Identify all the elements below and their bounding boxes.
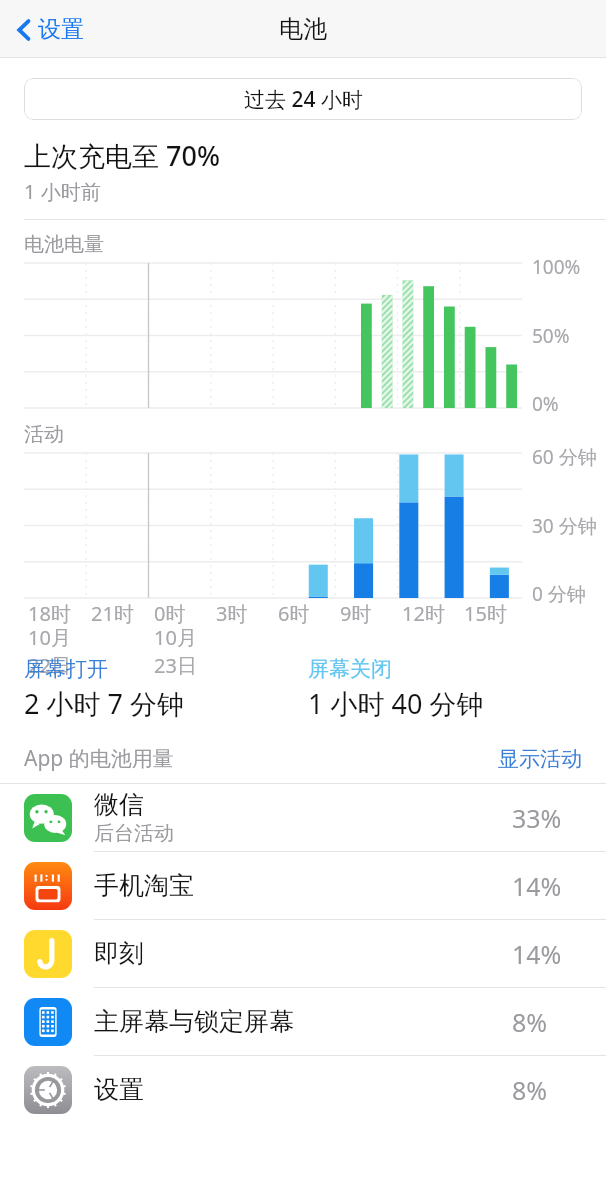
staticText: 即刻 (94, 938, 144, 969)
staticText: 1 小时前 (24, 178, 101, 205)
staticText: 18时 (28, 600, 71, 627)
staticText: 2 小时 7 分钟 (24, 685, 184, 722)
staticText: 60 分钟 (532, 444, 597, 470)
staticText: 电池 (279, 14, 327, 44)
staticText: 手机淘宝 (94, 870, 194, 901)
staticText: 8% (512, 1005, 582, 1039)
staticText: 14% (512, 937, 582, 971)
staticText: 12时 (402, 600, 445, 627)
button[interactable]: 手机淘宝 (0, 852, 606, 919)
staticText: 屏幕打开 (24, 656, 108, 682)
staticText: 0时 (154, 600, 186, 627)
staticText: 过去 24 小时 (244, 85, 363, 114)
staticText: 微信 (94, 789, 144, 820)
staticText: 主屏幕与锁定屏幕 (94, 1006, 294, 1037)
button[interactable]: 显示活动 (498, 746, 582, 772)
staticText: 10月22日 (28, 624, 87, 676)
button[interactable]: 主屏幕与锁定屏幕 (0, 988, 606, 1055)
staticText: 6时 (278, 600, 310, 627)
staticText: 33% (512, 801, 582, 835)
staticText: 30 分钟 (532, 513, 597, 539)
staticText: 21时 (91, 600, 134, 627)
staticText: 1 小时 40 分钟 (308, 685, 484, 722)
staticText: 15时 (464, 600, 507, 627)
other: 设置 (24, 1066, 72, 1114)
staticText: 9时 (340, 600, 372, 627)
other: 即刻 (24, 930, 72, 978)
other: 微信 (24, 794, 72, 842)
other: 手机淘宝 (24, 862, 72, 910)
staticText: 设置 (94, 1074, 144, 1105)
staticText: 上次充电至 70% (24, 137, 220, 174)
staticText: 100% (532, 254, 581, 280)
button[interactable]: 设置 (12, 9, 88, 50)
other: 主屏幕与锁定屏幕 (24, 998, 72, 1046)
staticText: 后台活动 (94, 821, 174, 846)
staticText: 显示活动 (498, 746, 582, 772)
button[interactable]: 即刻 (0, 920, 606, 987)
staticText: 屏幕关闭 (308, 656, 392, 682)
button[interactable]: 微信 (0, 784, 606, 851)
staticText: 50% (532, 323, 570, 349)
button[interactable]: 过去 24 小时 (24, 78, 582, 120)
staticText: 0 分钟 (532, 581, 586, 607)
staticText: 14% (512, 869, 582, 903)
staticText: App 的电池用量 (24, 744, 174, 773)
staticText: 3时 (216, 600, 248, 627)
staticText: 0% (532, 391, 559, 417)
button[interactable]: 设置 (0, 1056, 606, 1123)
staticText: 设置 (38, 15, 84, 44)
staticText: 8% (512, 1073, 582, 1107)
staticText: 10月23日 (154, 624, 212, 676)
staticText: 电池电量 (24, 232, 104, 257)
staticText: 活动 (24, 422, 64, 447)
